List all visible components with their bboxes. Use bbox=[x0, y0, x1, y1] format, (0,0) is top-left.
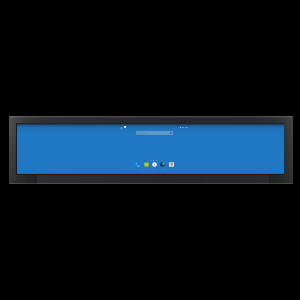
button[interactable]: Gallery bbox=[169, 162, 174, 167]
button[interactable]: Browser bbox=[160, 162, 165, 167]
button[interactable]: Phone bbox=[135, 162, 140, 167]
staticText: Google bbox=[137, 132, 147, 135]
button[interactable]: Google search bbox=[136, 131, 173, 135]
button[interactable]: Clock bbox=[152, 162, 157, 167]
button[interactable]: Messages bbox=[144, 162, 149, 167]
